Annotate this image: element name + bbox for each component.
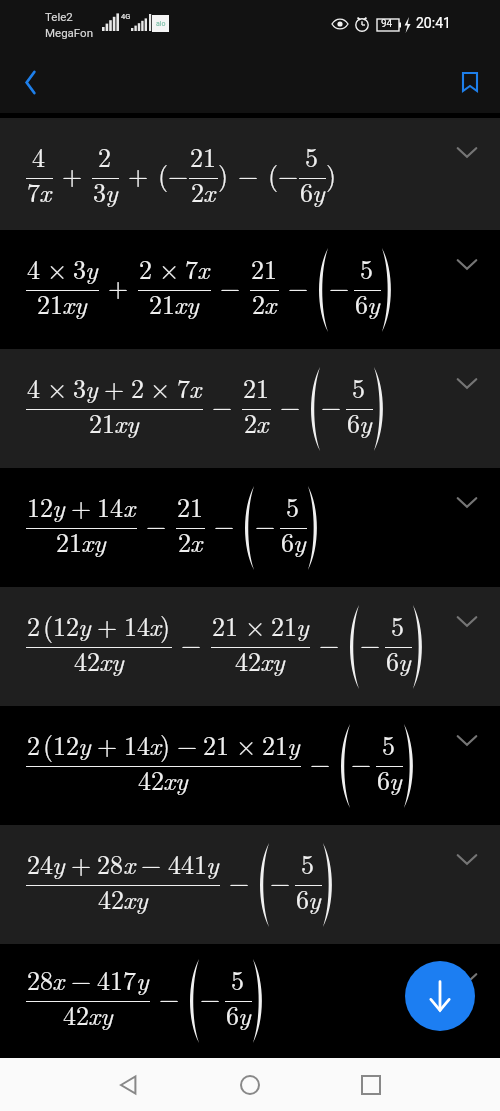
button[interactable]: Expand step	[456, 967, 478, 989]
staticText: 42	[63, 996, 90, 1033]
button[interactable]: Expand step	[456, 141, 478, 163]
staticText: 2	[139, 250, 153, 287]
button[interactable]: 4	[0, 118, 500, 230]
staticText: xy	[114, 404, 139, 441]
staticText: 21	[56, 523, 83, 560]
staticText: (−	[268, 156, 299, 193]
staticText: −	[159, 979, 180, 1016]
staticText: 5	[231, 961, 245, 998]
staticText: −	[214, 506, 235, 543]
button[interactable]: Home	[228, 1063, 272, 1107]
staticText: )	[326, 156, 337, 193]
button[interactable]: Expand step	[456, 848, 478, 870]
staticText: 7	[177, 369, 191, 406]
staticText: 21	[271, 607, 298, 644]
button[interactable]: 4	[0, 230, 500, 349]
button[interactable]: 28	[0, 944, 500, 1058]
staticText: 6	[347, 404, 361, 441]
staticText: 3	[73, 369, 87, 406]
staticText: 2	[191, 173, 205, 210]
staticText: 20:41	[416, 15, 451, 31]
staticText: 2	[98, 138, 112, 175]
staticText: −	[238, 156, 259, 193]
staticText: 42	[138, 761, 165, 798]
staticText: 21	[212, 607, 239, 644]
staticText: x	[123, 488, 136, 525]
staticText: −	[71, 961, 92, 998]
staticText: +	[108, 268, 129, 305]
staticText: 21	[190, 138, 217, 175]
button[interactable]: 2	[0, 587, 500, 706]
staticText: 14	[97, 488, 124, 525]
button[interactable]: Expand step	[456, 610, 478, 632]
staticText: −	[200, 979, 221, 1016]
button[interactable]: Expand step	[456, 491, 478, 513]
staticText: −	[229, 863, 250, 900]
staticText: 21	[251, 250, 278, 287]
staticText: xy	[260, 642, 285, 679]
staticText: 21	[262, 726, 289, 763]
staticText: 21	[177, 488, 204, 525]
staticText: )	[160, 607, 171, 644]
staticText: 21	[149, 285, 176, 322]
staticText: 21	[89, 404, 116, 441]
staticText: 2	[244, 404, 258, 441]
staticText: −	[220, 268, 241, 305]
staticText: xy	[99, 642, 124, 679]
staticText: ×	[236, 726, 257, 763]
staticText: −	[212, 387, 233, 424]
staticText: 21	[37, 285, 64, 322]
staticText: 28	[27, 961, 54, 998]
staticText: xy	[163, 761, 188, 798]
staticText: xy	[123, 880, 148, 917]
staticText: y	[78, 726, 91, 763]
staticText: x	[203, 173, 216, 210]
staticText: +	[128, 156, 149, 193]
staticText: 14	[124, 607, 151, 644]
staticText: 42	[235, 642, 262, 679]
staticText: 5	[301, 845, 315, 882]
staticText: y	[52, 488, 65, 525]
staticText: 6	[296, 880, 310, 917]
staticText: y	[136, 961, 149, 998]
button[interactable]: 24	[0, 825, 500, 944]
staticText: ×	[47, 250, 68, 287]
staticText: xy	[88, 996, 113, 1033]
staticText: y	[287, 726, 300, 763]
button[interactable]: 2	[0, 706, 500, 825]
staticText: −	[177, 726, 198, 763]
staticText: 94	[381, 18, 393, 30]
staticText: (−	[158, 156, 189, 193]
staticText: −	[255, 506, 276, 543]
button[interactable]: Back	[8, 60, 52, 104]
button[interactable]: Expand step	[456, 372, 478, 394]
staticText: x	[264, 285, 277, 322]
staticText: (12	[43, 607, 80, 644]
staticText: 417	[97, 961, 137, 998]
staticText: 7	[185, 250, 199, 287]
staticText: 6	[300, 173, 314, 210]
button[interactable]: Bookmark	[448, 60, 492, 104]
staticText: y	[105, 173, 118, 210]
staticText: +	[104, 369, 125, 406]
staticText: y	[367, 285, 380, 322]
button[interactable]: Recents	[349, 1063, 393, 1107]
button[interactable]: 12	[0, 468, 500, 587]
staticText: −	[146, 506, 167, 543]
staticText: 6	[386, 642, 400, 679]
staticText: x	[189, 369, 202, 406]
button[interactable]: Back	[107, 1063, 151, 1107]
staticText: −	[310, 744, 331, 781]
staticText: −	[351, 744, 372, 781]
staticText: −	[360, 625, 381, 662]
button[interactable]: Scroll to bottom	[405, 961, 475, 1031]
staticText: +	[71, 845, 92, 882]
staticText: y	[398, 642, 411, 679]
staticText: 14	[124, 726, 151, 763]
staticText: 42	[74, 642, 101, 679]
button[interactable]: 4	[0, 349, 500, 468]
button[interactable]: Expand step	[456, 729, 478, 751]
button[interactable]: Expand step	[456, 253, 478, 275]
staticText: −	[321, 387, 342, 424]
staticText: 21	[243, 369, 270, 406]
